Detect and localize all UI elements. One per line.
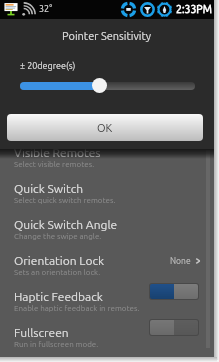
button[interactable]: Haptic Feedback: [0, 287, 214, 323]
button[interactable]: OK: [7, 114, 203, 141]
staticText: OK: [97, 122, 113, 134]
staticText: ± 20degree(s): [20, 61, 76, 71]
staticText: Sets an orientation lock.: [14, 268, 101, 277]
button[interactable]: Quick Switch Angle: [0, 215, 214, 251]
staticText: Visible Remotes: [14, 146, 101, 159]
button[interactable]: Quick Switch: [0, 179, 214, 215]
button[interactable]: Switch off: [149, 319, 199, 336]
staticText: Enable haptic feedback in remotes.: [14, 304, 140, 313]
staticText: 32°: [39, 4, 53, 14]
button[interactable]: Switch on: [149, 283, 199, 300]
staticText: Orientation Lock: [14, 254, 105, 267]
staticText: Haptic Feedback: [14, 290, 103, 303]
button[interactable]: Visible Remotes: [0, 143, 214, 179]
staticText: Change the swipe angle.: [14, 232, 102, 241]
button[interactable]: Fullscreen: [0, 323, 214, 357]
staticText: None: [170, 256, 191, 266]
staticText: Fullscreen: [14, 326, 69, 339]
button[interactable]: Orientation Lock: [0, 251, 214, 287]
staticText: Quick Switch Angle: [14, 218, 118, 231]
staticText: Select visible remotes.: [14, 160, 95, 169]
staticText: 2:33PM: [176, 3, 212, 15]
staticText: Pointer Sensitivity: [62, 30, 152, 42]
staticText: Quick Switch: [14, 182, 84, 195]
staticText: Select quick switch remotes.: [14, 196, 116, 205]
staticText: Run in fullscreen mode.: [14, 340, 99, 349]
